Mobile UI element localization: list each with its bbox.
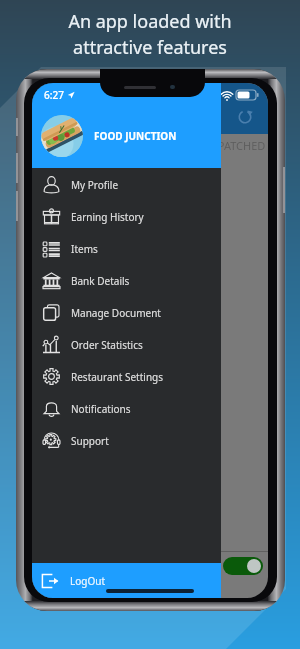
button[interactable]: LogOut (32, 563, 221, 598)
button[interactable]: Notifications (32, 393, 221, 425)
staticText: DISPATCHED (200, 138, 266, 153)
button[interactable]: Manage Document (32, 297, 221, 329)
staticText: LogOut (70, 574, 106, 588)
button[interactable]: Order Statistics (32, 329, 221, 361)
button[interactable]: Restaurant Settings (32, 361, 221, 393)
button[interactable]: Toggle (223, 557, 263, 575)
staticText: Earning History (71, 210, 144, 224)
staticText: An app loaded with attractive features (0, 9, 300, 59)
staticText: Items (71, 242, 98, 256)
staticText: FOOD JUNCTION (94, 129, 177, 143)
button[interactable]: My Profile (32, 169, 221, 201)
button[interactable]: Bank Details (32, 265, 221, 297)
staticText: Order Statistics (71, 338, 143, 352)
staticText: Notifications (71, 402, 131, 416)
button[interactable]: Refresh (236, 108, 254, 126)
button[interactable]: Support (32, 425, 221, 457)
button[interactable]: Earning History (32, 201, 221, 233)
staticText: 6:27 (44, 88, 64, 102)
staticText: My Profile (71, 178, 119, 192)
staticText: Bank Details (71, 274, 130, 288)
staticText: Support (71, 434, 109, 448)
button[interactable]: Items (32, 233, 221, 265)
staticText: Restaurant Settings (71, 370, 164, 384)
staticText: Manage Document (71, 306, 161, 320)
